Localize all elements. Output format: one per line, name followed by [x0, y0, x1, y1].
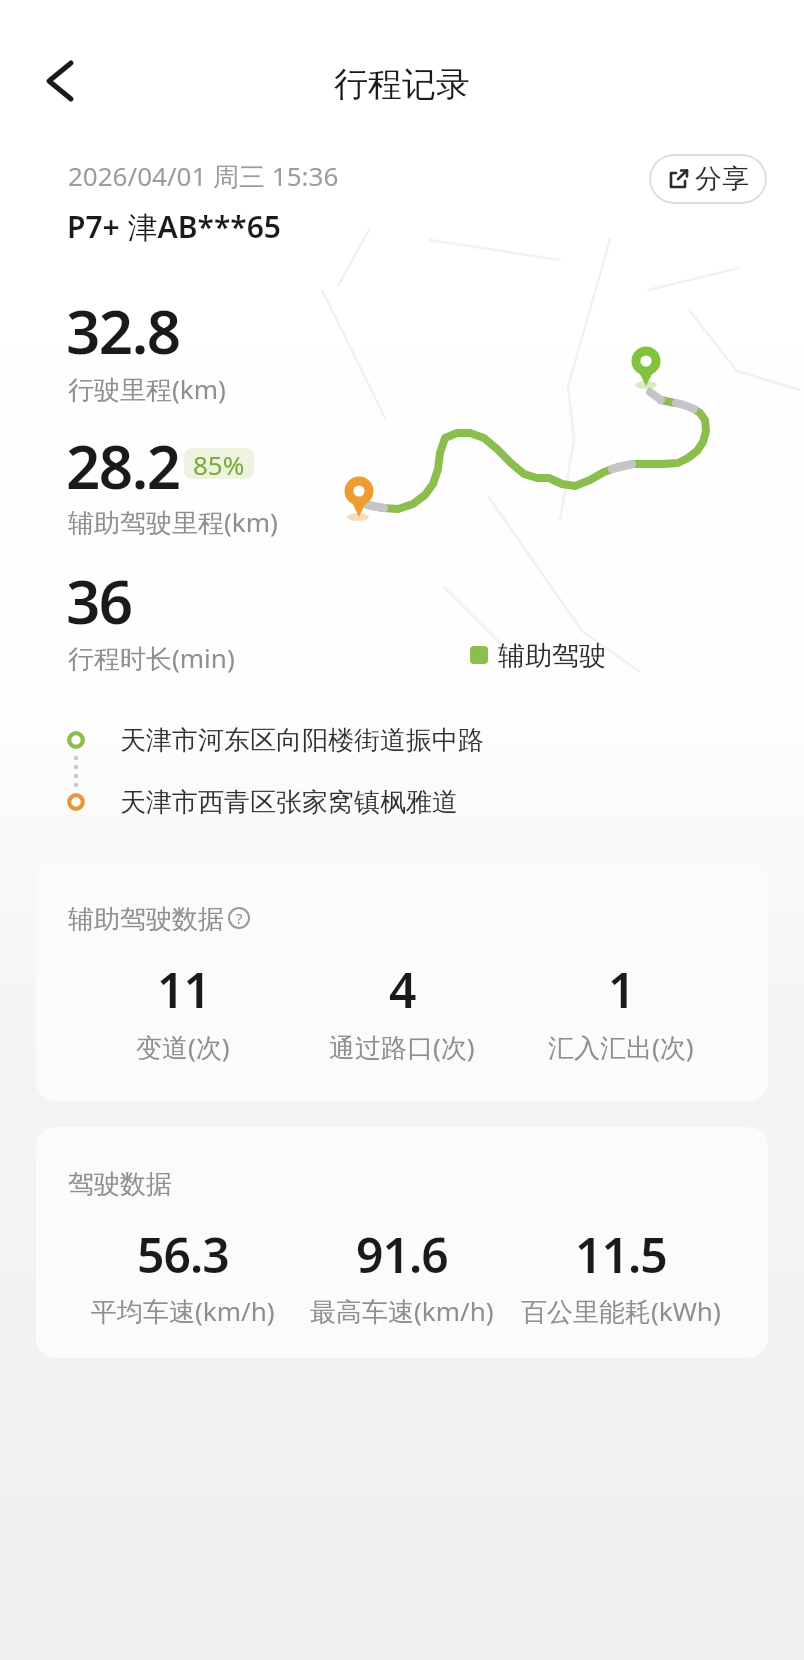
staticText: 最高车速(km/h) — [310, 1293, 494, 1329]
staticText: P7+ 津AB***65 — [67, 206, 281, 247]
staticText: 辅助驾驶数据 — [68, 903, 224, 936]
button[interactable]: 分享 — [649, 154, 767, 204]
staticText: 行程时长(min) — [68, 640, 235, 676]
staticText: 1 — [608, 957, 635, 1022]
staticText: 11 — [157, 957, 210, 1022]
staticText: 2026/04/01 周三 15:36 — [68, 158, 339, 194]
staticText: 变道(次) — [136, 1029, 230, 1065]
staticText: 85% — [193, 448, 245, 478]
staticText: 平均车速(km/h) — [91, 1293, 275, 1329]
staticText: 4 — [389, 957, 416, 1022]
staticText: 辅助驾驶 — [498, 639, 606, 673]
staticText: 56.3 — [137, 1222, 229, 1287]
button[interactable] — [30, 51, 90, 111]
staticText: 天津市河东区向阳楼街道振中路 — [120, 724, 484, 757]
staticText: 汇入汇出(次) — [548, 1029, 694, 1065]
staticText: 32.8 — [66, 290, 180, 372]
staticText: 辅助驾驶里程(km) — [68, 504, 278, 540]
button[interactable]: ? — [228, 907, 250, 929]
staticText: 天津市西青区张家窝镇枫雅道 — [120, 786, 458, 819]
staticText: 驾驶数据 — [68, 1168, 172, 1201]
staticText: 36 — [66, 560, 132, 642]
staticText: 通过路口(次) — [329, 1029, 475, 1065]
staticText: 行程记录 — [334, 63, 470, 106]
staticText: 分享 — [695, 162, 749, 196]
staticText: 28.2 — [66, 425, 180, 507]
staticText: 11.5 — [575, 1222, 667, 1287]
staticText: 91.6 — [356, 1222, 448, 1287]
staticText: 行驶里程(km) — [68, 371, 226, 407]
staticText: ? — [236, 908, 243, 928]
staticText: 百公里能耗(kWh) — [521, 1293, 721, 1329]
